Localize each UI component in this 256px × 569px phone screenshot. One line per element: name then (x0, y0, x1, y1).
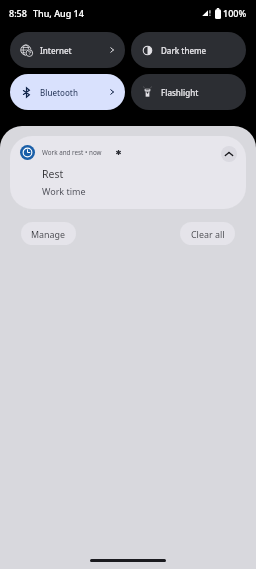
staticText: Internet (40, 45, 72, 56)
staticText: Work time (42, 185, 86, 197)
button[interactable]: Dark theme (131, 32, 246, 68)
staticText: Rest (42, 167, 64, 181)
button[interactable]: Flashlight (131, 74, 246, 110)
button[interactable]: Bluetooth (10, 74, 125, 110)
staticText: Bluetooth (40, 87, 78, 98)
staticText: Thu, Aug 14 (33, 7, 84, 19)
staticText: 8:58 (9, 7, 27, 19)
staticText: Manage (31, 228, 66, 240)
button[interactable]: Work and rest • now (10, 136, 246, 209)
staticText: Dark theme (161, 45, 207, 56)
staticText: Flashlight (161, 87, 199, 98)
staticText: 100% (223, 7, 247, 19)
button[interactable]: Collapse notification (221, 146, 237, 162)
button[interactable]: Clear all (180, 222, 235, 245)
staticText: Work and rest • now (42, 148, 102, 157)
button[interactable]: Internet (10, 32, 125, 68)
staticText: Clear all (191, 228, 225, 240)
button[interactable]: Manage (21, 222, 76, 245)
